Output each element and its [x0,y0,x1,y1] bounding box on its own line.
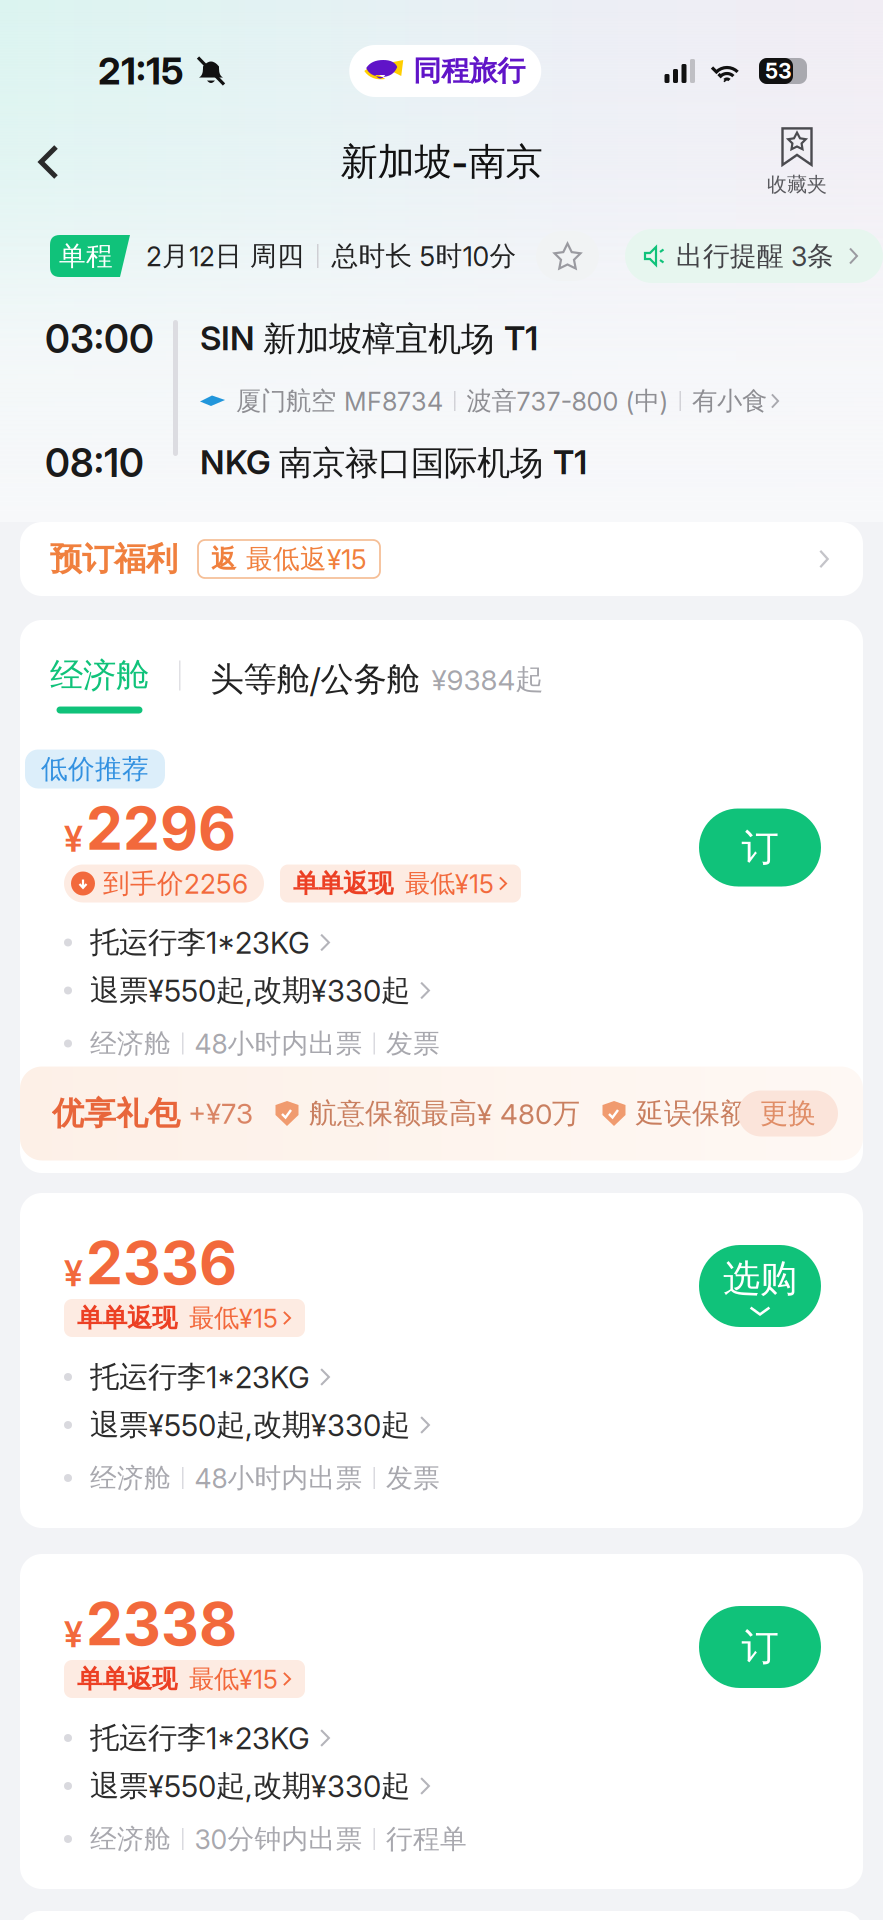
staticText: 2296 [86,793,236,864]
staticText: 最低¥15 [189,1302,278,1334]
staticText: 退票¥550起,改期¥330起 [90,1767,410,1804]
staticText: SIN 新加坡樟宜机场 T1 [200,318,538,360]
staticText: 低价推荐 [41,752,149,786]
staticText: 单单返现 [77,1663,177,1695]
staticText: 30分钟内出票 [194,1822,362,1856]
staticText: 选购 [723,1255,797,1302]
staticText: 波音737-800 (中) [466,385,668,417]
staticText: 最低¥15 [189,1663,278,1695]
button[interactable]: 更换 [738,1090,838,1136]
button[interactable]: 选购 [699,1245,821,1327]
staticText: 托运行李1*23KG [90,924,310,961]
staticText: 同程旅行 [413,53,525,89]
staticText: 单单返现 [293,867,393,899]
staticText: NKG 南京禄口国际机场 T1 [200,442,587,484]
button[interactable]: 收藏夹 [755,123,839,201]
button[interactable]: 预订福利 [0,522,863,596]
staticText: 2月12日 周四 [146,239,304,273]
staticText: 21:15 [98,48,184,94]
staticText: 退票¥550起,改期¥330起 [90,972,410,1009]
staticText: 有小食 [692,385,767,417]
staticText: 更换 [760,1096,816,1131]
staticText: 03:00 [45,316,154,362]
staticText: +¥73 [188,1097,253,1130]
button[interactable]: 经济舱 [50,632,149,713]
staticText: 托运行李1*23KG [90,1358,310,1395]
staticText: 到手价2256 [103,867,248,900]
staticText: 单单返现 [77,1302,177,1334]
staticText: 收藏夹 [767,172,827,197]
staticText: 新加坡-南京 [340,138,542,185]
staticText: 优享礼包 [52,1093,180,1134]
button[interactable]: 头等舱/公务舱 [210,632,543,700]
staticText: ¥ [64,1613,83,1655]
staticText: 53 [765,58,792,84]
staticText: 出行提醒 3条 [676,239,834,273]
staticText: 经济舱 [90,1822,171,1856]
button[interactable]: 订 [699,808,821,886]
staticText: 行程单 [386,1822,467,1856]
staticText: 08:10 [45,440,144,486]
staticText: 48小时内出票 [194,1461,362,1495]
staticText: ¥9384起 [431,662,543,697]
staticText: 最低¥15 [405,867,494,899]
staticText: 预订福利 [50,539,178,579]
staticText: 2338 [86,1588,237,1659]
staticText: 退票¥550起,改期¥330起 [90,1406,410,1443]
staticText: 经济舱 [50,654,149,696]
staticText: 航意保额最高¥ 480万 [309,1096,580,1131]
staticText: 最低返¥15 [246,542,367,576]
staticText: 经济舱 [90,1461,171,1495]
button[interactable]: 收藏航班 [536,231,599,281]
button[interactable]: 返回 [18,128,79,196]
button[interactable]: 出行提醒 3条 [625,229,883,283]
staticText: 单程 [59,239,113,273]
staticText: 订 [741,1623,778,1670]
staticText: 延误保额最 [636,1096,776,1131]
staticText: ¥ [64,1252,83,1294]
staticText: 48小时内出票 [194,1027,362,1060]
staticText: 返 [211,543,236,575]
staticText: 经济舱 [90,1027,171,1060]
staticText: 发票 [386,1027,440,1060]
staticText: 头等舱/公务舱 [210,658,419,700]
staticText: ¥ [64,818,83,860]
staticText: 订 [741,824,778,871]
button[interactable]: 订 [699,1606,821,1688]
staticText: 厦门航空 MF8734 [236,385,443,417]
staticText: 发票 [386,1461,440,1495]
staticText: 总时长 5时10分 [331,239,516,273]
staticText: 托运行李1*23KG [90,1719,310,1756]
staticText: 2336 [86,1227,237,1298]
